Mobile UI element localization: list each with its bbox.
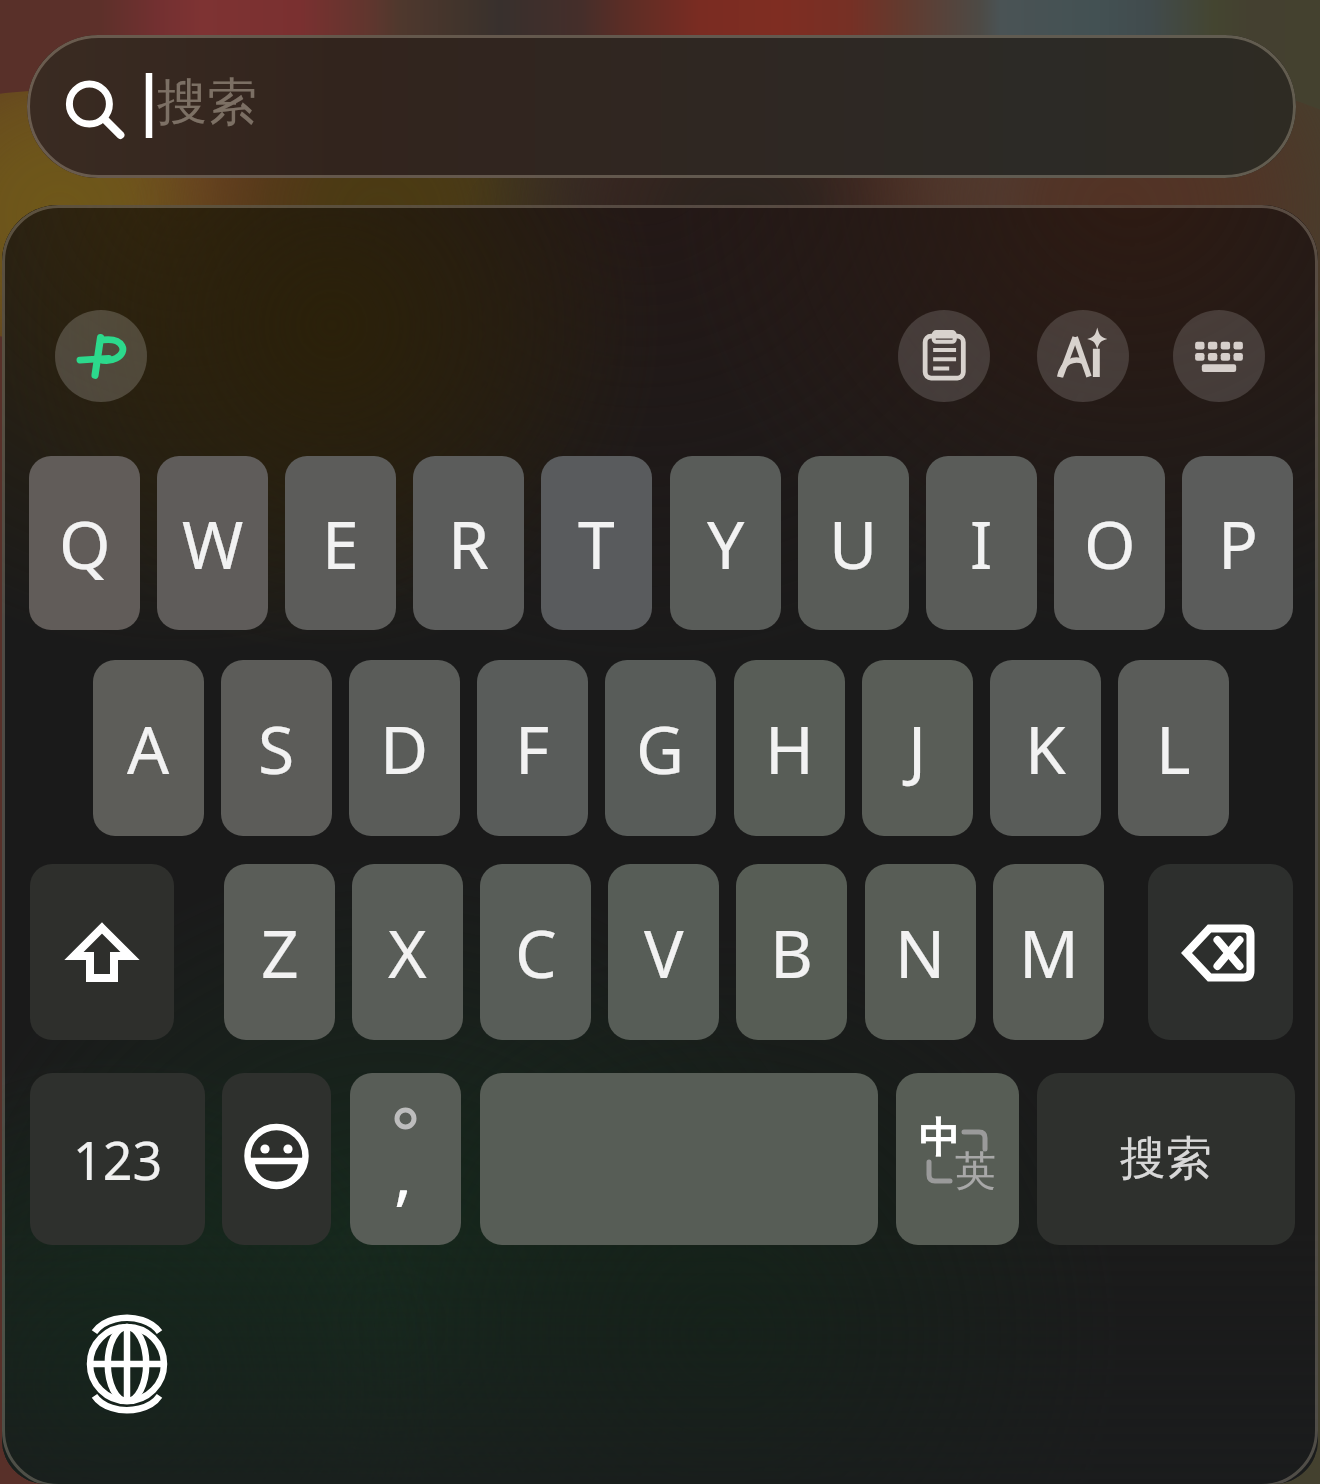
button[interactable]: U xyxy=(798,456,909,630)
button[interactable]: S xyxy=(221,660,332,836)
button[interactable]: Space xyxy=(480,1073,878,1245)
button[interactable]: T xyxy=(541,456,652,630)
button[interactable]: J xyxy=(862,660,973,836)
button[interactable]: Y xyxy=(670,456,781,630)
button[interactable]: R xyxy=(413,456,524,630)
staticText: F xyxy=(515,703,550,793)
staticText: 中 xyxy=(919,1113,960,1165)
staticText: X xyxy=(388,907,427,997)
button[interactable]: Backspace xyxy=(1148,864,1293,1040)
button[interactable]: H xyxy=(734,660,845,836)
button[interactable]: O xyxy=(1054,456,1165,630)
button[interactable]: Shift xyxy=(30,864,174,1040)
staticText: K xyxy=(1025,703,1066,793)
button[interactable]: Q xyxy=(29,456,140,630)
staticText: N xyxy=(895,907,946,997)
button[interactable]: Clipboard xyxy=(898,310,990,402)
button[interactable]: G xyxy=(605,660,716,836)
staticText: C xyxy=(515,907,557,997)
staticText: Y xyxy=(707,498,745,588)
staticText: 123 xyxy=(73,1124,163,1195)
button[interactable]: AI assistant xyxy=(1037,310,1129,402)
staticText: H xyxy=(765,703,814,793)
button[interactable]: A xyxy=(93,660,204,836)
button[interactable]: X xyxy=(352,864,463,1040)
staticText: J xyxy=(908,703,927,793)
staticText: O xyxy=(1084,498,1136,588)
button[interactable]: Input method settings xyxy=(55,310,147,402)
button[interactable]: C xyxy=(480,864,591,1040)
button[interactable]: Switch input language xyxy=(72,1309,182,1419)
button[interactable]: E xyxy=(285,456,396,630)
button[interactable]: V xyxy=(608,864,719,1040)
button[interactable]: L xyxy=(1118,660,1229,836)
staticText: D xyxy=(380,703,429,793)
button[interactable]: D xyxy=(349,660,460,836)
button[interactable]: Comma xyxy=(350,1073,461,1245)
staticText: 搜索 xyxy=(1120,1130,1212,1188)
button[interactable]: 123 xyxy=(30,1073,205,1245)
button[interactable]: F xyxy=(477,660,588,836)
staticText: R xyxy=(448,498,490,588)
button[interactable]: P xyxy=(1182,456,1293,630)
button[interactable]: K xyxy=(990,660,1101,836)
button[interactable]: B xyxy=(736,864,847,1040)
button[interactable]: M xyxy=(993,864,1104,1040)
staticText: S xyxy=(258,703,295,793)
staticText: W xyxy=(182,498,244,588)
button[interactable]: Keyboard layout xyxy=(1173,310,1265,402)
button[interactable]: 搜索 xyxy=(27,35,1296,178)
staticText: 搜索 xyxy=(157,71,257,134)
staticText: , xyxy=(394,1125,413,1218)
staticText: T xyxy=(578,498,615,588)
staticText: I xyxy=(970,498,993,588)
staticText: 英 xyxy=(955,1146,996,1198)
button[interactable]: W xyxy=(157,456,268,630)
staticText: M xyxy=(1019,907,1079,997)
button[interactable]: N xyxy=(865,864,976,1040)
staticText: V xyxy=(644,907,684,997)
staticText: B xyxy=(770,907,813,997)
staticText: Z xyxy=(261,907,299,997)
button[interactable]: Z xyxy=(224,864,335,1040)
button[interactable]: Emoji xyxy=(222,1073,331,1245)
staticText: P xyxy=(1218,498,1258,588)
staticText: Q xyxy=(59,498,111,588)
staticText: E xyxy=(322,498,359,588)
button[interactable]: 搜索 xyxy=(1037,1073,1295,1245)
staticText: L xyxy=(1156,703,1191,793)
button[interactable]: I xyxy=(926,456,1037,630)
button[interactable]: Chinese English toggle xyxy=(896,1073,1019,1245)
staticText: G xyxy=(636,703,685,793)
staticText: U xyxy=(829,498,878,588)
staticText: A xyxy=(127,703,170,793)
